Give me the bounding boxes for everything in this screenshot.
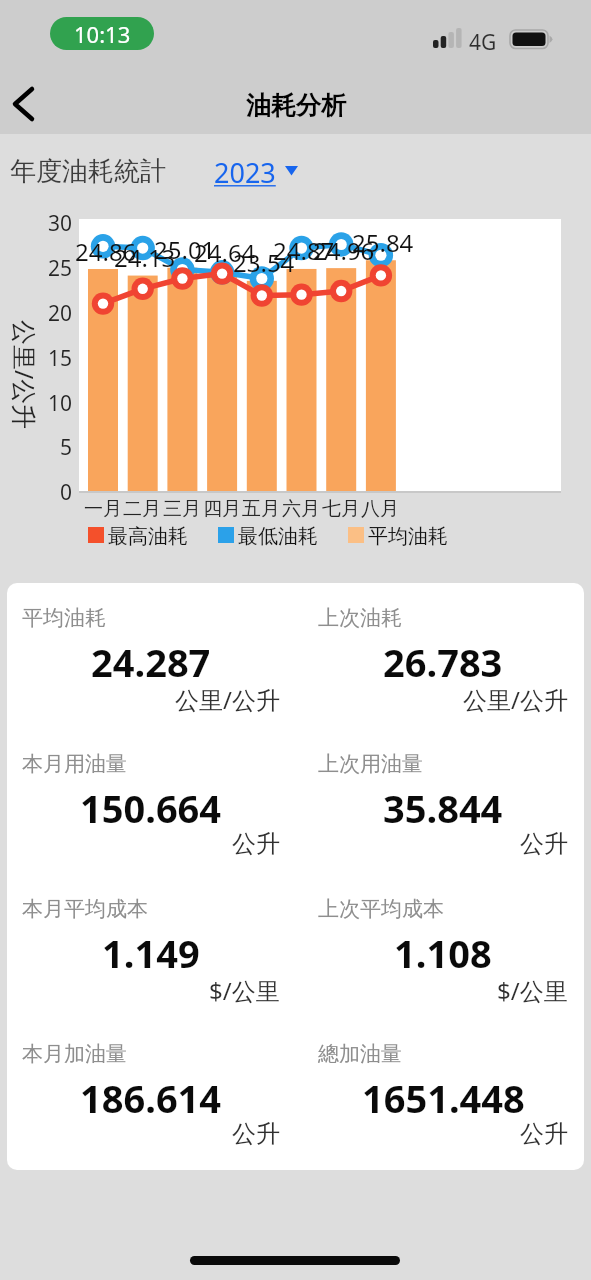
staticText: $/公里 (209, 974, 280, 1007)
staticText: 24.287 (91, 636, 211, 688)
staticText: 150.664 (80, 782, 222, 834)
staticText: 本月加油量 (22, 1041, 127, 1067)
staticText: 23.54 (233, 246, 295, 279)
staticText: 三月 (163, 497, 201, 521)
staticText: 24.13 (114, 241, 176, 274)
staticText: 5 (60, 433, 73, 462)
staticText: 4G (469, 28, 497, 57)
staticText: 公升 (232, 1119, 280, 1149)
staticText: 上次用油量 (318, 751, 423, 777)
staticText: 五月 (242, 497, 280, 521)
staticText: 平均油耗 (22, 605, 106, 631)
staticText: 本月用油量 (22, 751, 127, 777)
staticText: 1.108 (394, 927, 492, 979)
staticText: 20 (48, 299, 73, 328)
staticText: 26.783 (383, 636, 503, 688)
staticText: 公里/公升 (463, 683, 568, 716)
staticText: 10 (48, 389, 73, 418)
staticText: 0 (60, 478, 73, 507)
staticText: 公里/公升 (175, 683, 280, 716)
staticText: 七月 (322, 497, 360, 521)
staticText: 公升 (232, 829, 280, 859)
staticText: 平均油耗 (368, 524, 448, 549)
staticText: 八月 (361, 497, 399, 521)
staticText: 公升 (520, 829, 568, 859)
staticText: 公升 (520, 1119, 568, 1149)
staticText: 最低油耗 (238, 524, 318, 549)
staticText: 最高油耗 (108, 524, 188, 549)
staticText: 總加油量 (318, 1041, 402, 1067)
button[interactable]: 2023 (208, 148, 308, 188)
staticText: 公里/公升 (10, 320, 42, 430)
staticText: 1651.448 (362, 1072, 525, 1124)
staticText: 30 (48, 209, 73, 238)
staticText: 二月 (123, 497, 161, 521)
staticText: 25.84 (352, 226, 414, 259)
staticText: 15 (48, 344, 73, 373)
staticText: 一月 (84, 497, 122, 521)
staticText: 24.87 (273, 234, 335, 267)
staticText: 2023 (214, 154, 276, 191)
staticText: 10:13 (74, 19, 131, 49)
staticText: 24.86 (75, 235, 137, 268)
staticText: 35.844 (383, 782, 503, 834)
staticText: 上次平均成本 (318, 896, 444, 922)
staticText: 186.614 (80, 1072, 222, 1124)
staticText: 24.96 (313, 234, 375, 267)
staticText: 上次油耗 (318, 605, 402, 631)
staticText: 年度油耗統計 (10, 155, 166, 188)
staticText: 25.01 (154, 233, 216, 266)
staticText: 四月 (203, 497, 241, 521)
staticText: 油耗分析 (246, 90, 346, 121)
staticText: 25 (48, 254, 73, 283)
staticText: 1.149 (102, 927, 200, 979)
staticText: $/公里 (497, 974, 568, 1007)
button[interactable] (6, 84, 50, 126)
staticText: 本月平均成本 (22, 896, 148, 922)
staticText: 24.64 (194, 236, 256, 269)
staticText: 六月 (282, 497, 320, 521)
